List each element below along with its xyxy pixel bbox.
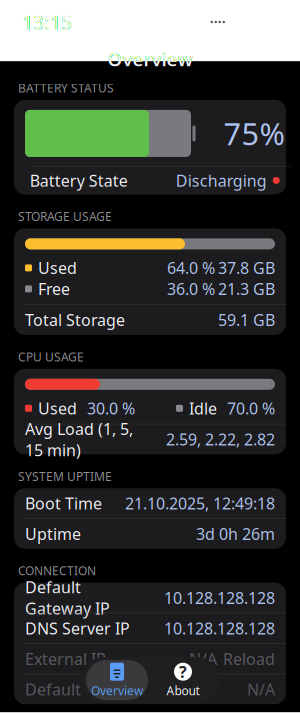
staticText: 21.10.2025, 12:49:18 [125,493,275,514]
button[interactable]: Total Storage [14,305,286,335]
staticText: CPU USAGE [18,349,84,365]
staticText: N/A [189,648,217,669]
staticText: Default Gateway IPv6 [25,679,187,700]
staticText: Overview [107,47,192,71]
staticText: SYSTEM UPTIME [18,468,112,484]
staticText: About [166,683,199,699]
staticText: 37.8 GB [218,257,275,278]
staticText: Used [38,257,77,278]
staticText: Default Gateway IP [25,576,110,619]
button[interactable]: Boot Time [14,488,286,518]
button[interactable]: ? [152,660,214,700]
staticText: Free [38,278,70,299]
staticText: 21.3 GB [218,278,275,299]
staticText: Used [38,398,77,419]
staticText: 75% [223,113,284,154]
button[interactable]: Avg Load (1, 5, 15 min) [14,424,286,454]
staticText: 30.0 % [87,398,135,419]
staticText: 10.128.128.128 [164,618,275,639]
staticText: Overview [91,683,143,699]
staticText: BATTERY STATUS [18,80,114,96]
staticText: STORAGE USAGE [18,208,112,224]
button[interactable]: Default Gateway IP [14,583,286,613]
staticText: 59.1 GB [218,309,275,330]
staticText: DNS Server IP [25,618,130,639]
staticText: 2.59, 2.22, 2.82 [166,429,275,450]
staticText: 3d 0h 26m [196,523,275,544]
staticText: Discharging [176,170,267,191]
staticText: 13:15 [22,9,72,35]
staticText: Total Storage [25,309,125,330]
staticText: Boot Time [25,493,102,514]
staticText: Avg Load (1, 5, 15 min) [25,418,133,461]
staticText: 10.128.128.128 [164,587,275,608]
staticText: External IP [25,648,106,669]
button[interactable]: Uptime [14,519,286,549]
button[interactable]: Default Gateway IPv6 [14,674,286,704]
staticText: N/A [247,679,275,700]
staticText: Reload [223,648,275,669]
staticText: Uptime [25,523,81,544]
staticText: ? [179,661,187,682]
button[interactable]: Overview [86,660,148,700]
staticText: 70.0 % [227,398,275,419]
button[interactable]: Battery State [19,166,291,194]
button[interactable]: External IP [14,644,286,674]
staticText: 36.0 % [167,278,215,299]
staticText: Idle [189,398,217,419]
staticText: Battery State [30,170,128,191]
staticText: CONNECTION [18,563,96,579]
button[interactable]: DNS Server IP [14,613,286,643]
staticText: 64.0 % [167,257,215,278]
